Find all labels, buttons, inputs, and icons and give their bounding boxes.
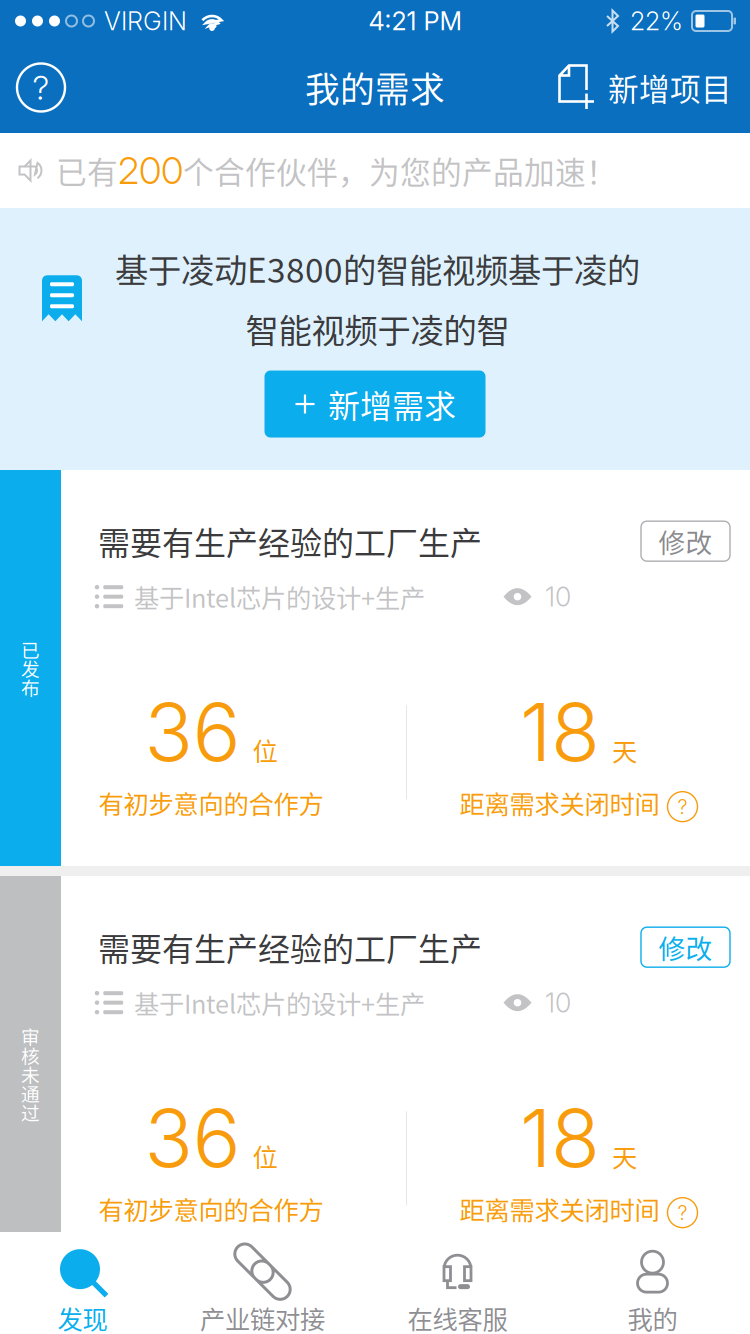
staticText: 36 xyxy=(144,683,240,780)
staticText: 布 xyxy=(21,673,40,700)
staticText: 我的 xyxy=(627,1300,677,1334)
staticText: 修改 xyxy=(658,522,712,560)
button[interactable]: Help xyxy=(17,63,65,111)
button[interactable]: 产业链对接 xyxy=(165,1232,360,1334)
staticText: 200 xyxy=(118,148,183,193)
button[interactable]: 修改 xyxy=(641,521,730,561)
staticText: 10 xyxy=(545,580,571,613)
staticText: 新增项目 xyxy=(608,65,732,110)
staticText: 新增需求 xyxy=(328,381,456,427)
staticText: 36 xyxy=(144,1089,240,1186)
staticText: 有初步意向的合作方 xyxy=(98,1190,323,1227)
staticText: 需要有生产经验的工厂生产 xyxy=(98,518,482,564)
staticText: ? xyxy=(677,795,687,819)
staticText: 智能视频于凌的智 xyxy=(245,304,509,353)
staticText: 已有 xyxy=(56,148,118,193)
button[interactable]: 发现 xyxy=(0,1232,165,1334)
staticText: 需要有生产经验的工厂生产 xyxy=(98,924,482,970)
staticText: 核 xyxy=(21,1041,40,1068)
button[interactable]: 我的 xyxy=(555,1232,750,1334)
staticText: 4:21 PM xyxy=(368,6,462,36)
staticText: 基于Intel芯片的设计+生产 xyxy=(134,984,425,1021)
staticText: 有初步意向的合作方 xyxy=(98,784,323,821)
staticText: 通 xyxy=(21,1079,40,1106)
staticText: 在线客服 xyxy=(407,1300,507,1334)
staticText: 已 xyxy=(21,635,40,662)
staticText: ? xyxy=(677,1201,687,1225)
staticText: 10 xyxy=(545,986,571,1019)
button[interactable]: 在线客服 xyxy=(360,1232,555,1334)
staticText: 距离需求关闭时间 xyxy=(459,784,659,821)
staticText: 未 xyxy=(21,1060,40,1087)
staticText: 基于凌动E3800的智能视频基于凌的 xyxy=(115,244,640,292)
staticText: 位 xyxy=(252,732,277,768)
staticText: 过 xyxy=(21,1098,40,1125)
staticText: ? xyxy=(32,67,49,108)
staticText: 天 xyxy=(612,1138,637,1174)
staticText: 产业链对接 xyxy=(200,1300,325,1334)
staticText: 22% xyxy=(630,6,683,36)
staticText: 修改 xyxy=(658,928,712,966)
staticText: VIRGIN xyxy=(104,6,187,36)
staticText: 我的需求 xyxy=(305,62,445,113)
staticText: 发 xyxy=(21,654,40,681)
button[interactable]: 新增需求 xyxy=(264,370,485,437)
button[interactable]: 修改 xyxy=(641,927,730,967)
button[interactable]: 新增项目 xyxy=(558,64,732,111)
staticText: 距离需求关闭时间 xyxy=(459,1190,659,1227)
staticText: 位 xyxy=(252,1138,277,1174)
staticText: 发现 xyxy=(57,1300,107,1334)
staticText: 天 xyxy=(612,732,637,768)
staticText: 审 xyxy=(21,1022,40,1049)
staticText: 基于Intel芯片的设计+生产 xyxy=(134,578,425,615)
staticText: 18 xyxy=(520,1089,600,1186)
staticText: 18 xyxy=(520,683,600,780)
staticText: 个合作伙伴，为您的产品加速！ xyxy=(183,148,617,193)
